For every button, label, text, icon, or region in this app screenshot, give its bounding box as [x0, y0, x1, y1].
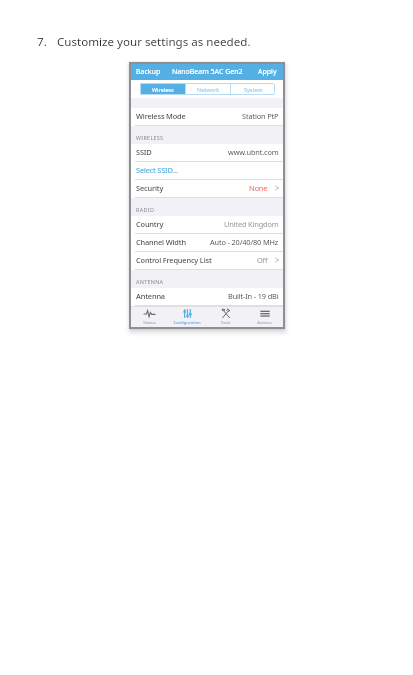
staticText: 7. — [37, 34, 47, 50]
button[interactable]: Wireless Mode — [130, 108, 284, 125]
staticText: Country — [136, 219, 164, 229]
staticText: None — [249, 183, 268, 193]
staticText: Station PtP — [242, 111, 279, 121]
staticText: WIRELESS — [136, 134, 164, 141]
staticText: Wireless Mode — [136, 111, 186, 121]
staticText: Wireless — [152, 86, 174, 93]
button[interactable]: Control Frequency List — [130, 252, 284, 269]
other: Tools — [221, 309, 231, 318]
button[interactable]: Antenna — [130, 288, 284, 305]
staticText: Channel Width — [136, 237, 186, 247]
staticText: Backup — [136, 67, 161, 77]
staticText: NanoBeam 5AC Gen2 — [172, 67, 243, 77]
staticText: Select SSID... — [136, 165, 178, 175]
staticText: Off — [257, 255, 268, 265]
staticText: www.ubnt.com — [228, 147, 279, 157]
button[interactable]: Backup — [130, 67, 165, 77]
staticText: Customize your settings as needed. — [57, 34, 251, 50]
staticText: System — [244, 86, 263, 93]
other: Status — [144, 309, 155, 318]
staticText: Actions — [257, 320, 272, 326]
button[interactable]: Country — [130, 216, 284, 233]
staticText: Tools — [220, 320, 231, 326]
staticText: Status — [143, 320, 156, 326]
staticText: Apply — [258, 67, 277, 77]
staticText: Control Frequency List — [136, 255, 212, 265]
staticText: Network — [197, 86, 220, 93]
button[interactable]: Security — [130, 180, 284, 197]
button[interactable]: Network — [186, 83, 230, 95]
staticText: Antenna — [136, 291, 165, 301]
button[interactable]: Configuration — [168, 307, 206, 328]
button[interactable]: Status — [130, 307, 168, 328]
staticText: Auto - 20/40/80 MHz — [210, 237, 279, 247]
button[interactable]: Tools — [206, 307, 245, 328]
staticText: United Kingdom — [224, 219, 279, 229]
staticText: SSID — [136, 147, 152, 157]
button[interactable]: Select SSID... — [130, 162, 284, 179]
staticText: Security — [136, 183, 164, 193]
button[interactable]: Wireless — [140, 83, 185, 95]
staticText: ANTENNA — [136, 278, 164, 285]
button[interactable]: Channel Width — [130, 234, 284, 251]
staticText: Configuration — [173, 320, 201, 326]
staticText: Built-In - 19 dBi — [228, 291, 279, 301]
button[interactable]: Apply — [254, 67, 284, 77]
other: Configuration — [183, 309, 192, 318]
button[interactable]: System — [231, 83, 275, 95]
other: Actions — [260, 309, 270, 318]
staticText: RADIO — [136, 206, 155, 213]
button[interactable]: SSID — [130, 144, 284, 161]
button[interactable]: Actions — [245, 307, 284, 328]
